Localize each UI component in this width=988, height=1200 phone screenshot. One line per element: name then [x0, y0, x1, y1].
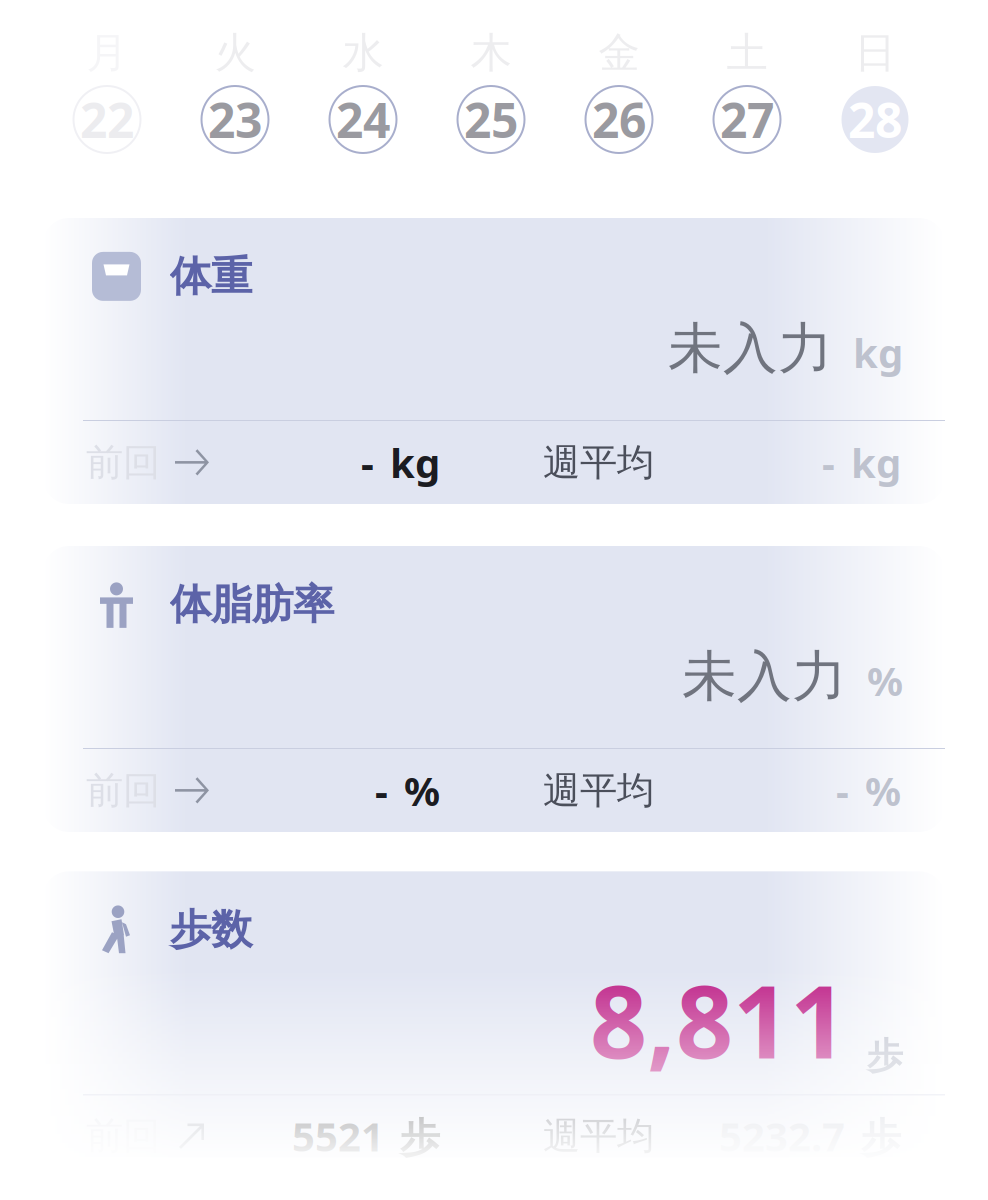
staticText: 前回 — [86, 768, 160, 813]
staticText: 日 — [854, 28, 895, 78]
staticText: 26 — [592, 88, 646, 151]
staticText: 22 — [80, 88, 134, 151]
staticText: 23 — [208, 88, 262, 151]
button[interactable]: 月 — [43, 31, 171, 153]
staticText: 未入力 — [682, 643, 847, 710]
staticText: kg — [390, 436, 440, 489]
staticText: 週平均 — [543, 768, 654, 813]
staticText: 歩 — [867, 1034, 903, 1078]
staticText: - — [375, 764, 388, 817]
button[interactable]: 日 — [811, 31, 939, 153]
staticText: 5232.7 — [719, 1109, 845, 1162]
staticText: 月 — [86, 28, 127, 78]
staticText: - — [361, 436, 374, 489]
button[interactable]: 水 — [299, 31, 427, 153]
staticText: % — [865, 764, 901, 817]
staticText: 28 — [848, 88, 902, 151]
staticText: 25 — [464, 88, 518, 151]
staticText: 24 — [336, 88, 390, 151]
staticText: 27 — [720, 88, 774, 151]
staticText: 歩 — [861, 1113, 901, 1163]
staticText: % — [867, 654, 903, 707]
button[interactable]: 体重 — [43, 218, 945, 504]
button[interactable]: 金 — [555, 31, 683, 153]
staticText: - — [822, 436, 835, 489]
staticText: kg — [851, 436, 901, 489]
staticText: 未入力 — [668, 315, 833, 382]
staticText: 前回 — [86, 440, 160, 485]
button[interactable]: 木 — [427, 31, 555, 153]
staticText: 水 — [342, 28, 383, 78]
staticText: - — [836, 764, 849, 817]
staticText: kg — [853, 326, 903, 379]
staticText: 木 — [470, 28, 511, 78]
staticText: 歩 — [400, 1113, 440, 1163]
button[interactable]: 体脂肪率 — [43, 546, 945, 832]
staticText: 金 — [598, 28, 639, 78]
staticText: 週平均 — [543, 1113, 654, 1159]
button[interactable]: 歩数 — [43, 874, 945, 1160]
staticText: 8,811 — [590, 953, 847, 1086]
staticText: 週平均 — [543, 440, 654, 485]
staticText: 5521 — [292, 1109, 384, 1162]
staticText: 歩数 — [170, 904, 252, 955]
button[interactable]: 火 — [171, 31, 299, 153]
staticText: 火 — [214, 28, 255, 78]
staticText: 土 — [726, 28, 767, 78]
staticText: % — [404, 764, 440, 817]
button[interactable]: 土 — [683, 31, 811, 153]
staticText: 体脂肪率 — [170, 579, 334, 630]
staticText: 体重 — [170, 251, 252, 302]
